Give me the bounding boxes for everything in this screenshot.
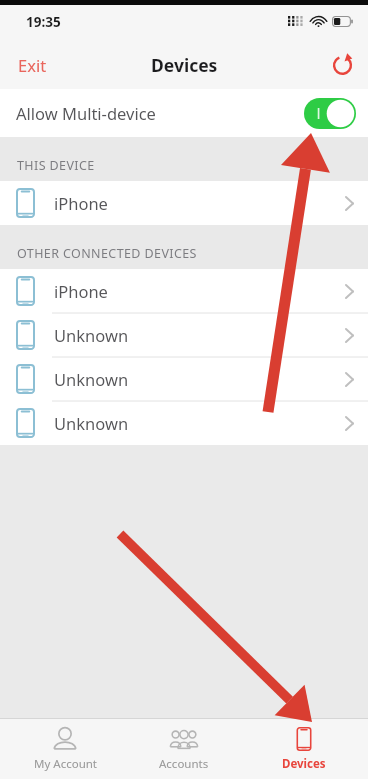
- button[interactable]: Unknown: [0, 313, 368, 357]
- button[interactable]: Unknown: [0, 401, 368, 445]
- button[interactable]: Exit: [0, 46, 65, 84]
- staticText: OTHER CONNECTED DEVICES: [17, 245, 197, 262]
- button[interactable]: iPhone: [0, 181, 368, 225]
- button[interactable]: Accounts: [129, 719, 239, 779]
- staticText: Unknown: [54, 412, 129, 434]
- button[interactable]: iPhone: [0, 269, 368, 313]
- button[interactable]: Allow Multi-device: [0, 89, 368, 137]
- staticText: iPhone: [54, 280, 108, 302]
- staticText: Exit: [18, 54, 47, 76]
- staticText: 19:35: [26, 13, 61, 31]
- button[interactable]: Refresh: [317, 46, 368, 83]
- staticText: Allow Multi-device: [16, 102, 156, 124]
- staticText: iPhone: [54, 192, 108, 214]
- button[interactable]: Devices: [249, 719, 359, 779]
- staticText: Devices: [282, 756, 326, 772]
- staticText: THIS DEVICE: [17, 157, 95, 174]
- staticText: Devices: [151, 53, 218, 77]
- staticText: Accounts: [159, 756, 209, 772]
- staticText: My Account: [34, 756, 97, 772]
- button[interactable]: My Account: [10, 719, 120, 779]
- staticText: Unknown: [54, 368, 129, 390]
- button[interactable]: Unknown: [0, 357, 368, 401]
- staticText: Unknown: [54, 324, 129, 346]
